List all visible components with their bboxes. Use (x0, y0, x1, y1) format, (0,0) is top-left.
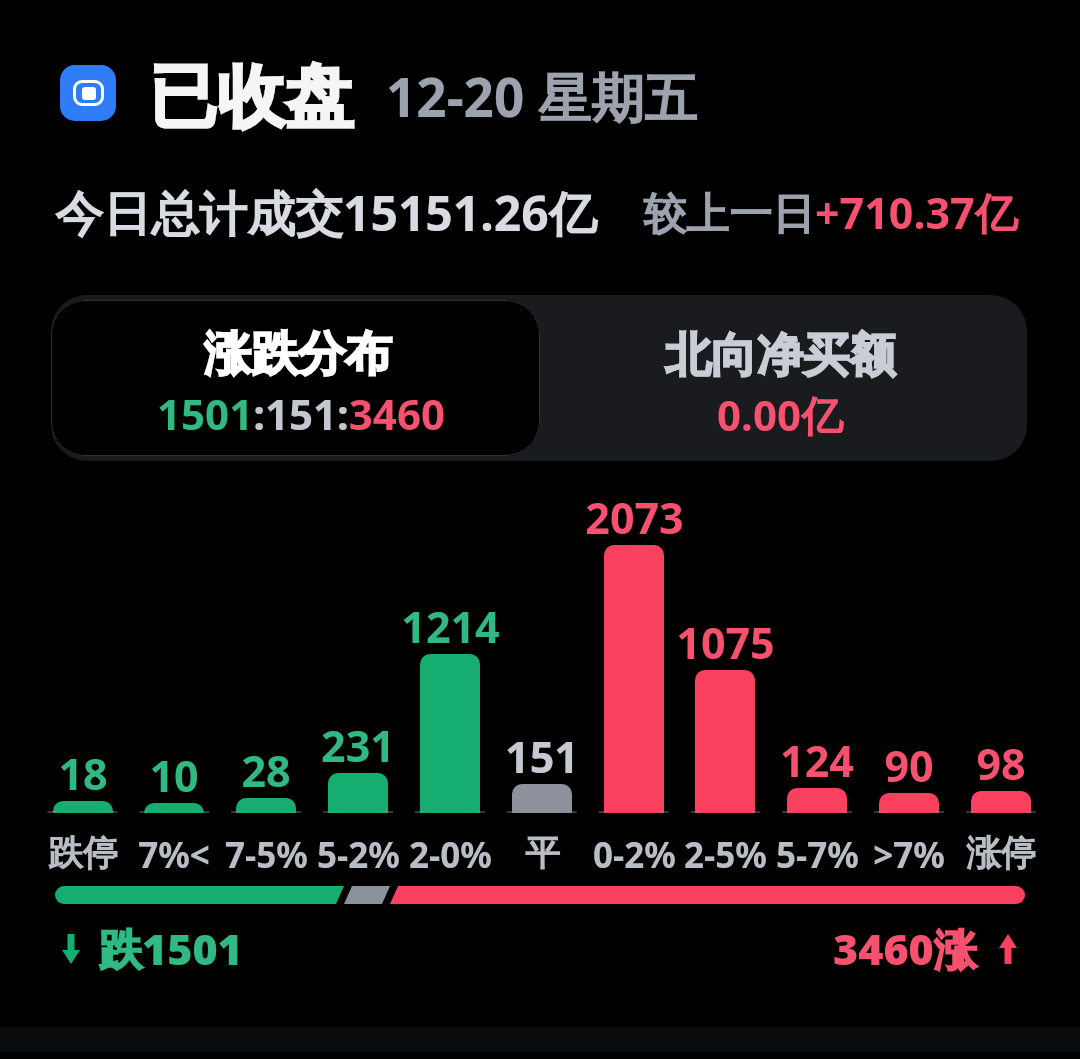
staticText: 231 (321, 716, 395, 775)
staticText: 已收盘 (149, 55, 353, 141)
staticText: 2-5% (684, 831, 767, 879)
staticText: 2-0% (409, 831, 492, 879)
staticText: 1501:151:3460 (157, 385, 445, 442)
staticText: 1075 (676, 613, 775, 672)
staticText: 北向净买额 (665, 327, 895, 385)
staticText: 28 (241, 741, 291, 800)
button[interactable]: Market status (60, 65, 116, 121)
staticText: >7% (873, 831, 945, 879)
staticText: 3460涨 (833, 919, 977, 978)
staticText: 7-5% (225, 831, 308, 879)
button[interactable]: 3460涨 (833, 919, 1017, 978)
staticText: 涨停 (966, 831, 1036, 875)
staticText: 今日总计成交15151.26亿 (55, 180, 597, 246)
staticText: 12-20 星期五 (386, 60, 698, 132)
staticText: 跌1501 (99, 919, 243, 978)
staticText: 较上一日+710.37亿 (643, 183, 1018, 242)
staticText: 98 (976, 734, 1026, 793)
staticText: 1214 (401, 597, 500, 656)
button[interactable]: Down (62, 919, 243, 978)
other: Down (62, 934, 80, 964)
staticText: 7%< (138, 831, 210, 879)
staticText: 平 (525, 831, 560, 875)
staticText: 18 (58, 744, 108, 803)
staticText: 0.00亿 (717, 386, 843, 443)
staticText: 5-7% (776, 831, 859, 879)
other: Up (999, 934, 1017, 964)
staticText: 跌停 (48, 831, 118, 875)
staticText: 10 (149, 746, 199, 805)
staticText: 124 (780, 731, 854, 790)
staticText: 涨跌分布 (204, 325, 392, 384)
button[interactable]: 北向净买额 (540, 295, 1027, 461)
staticText: 0-2% (593, 831, 676, 879)
staticText: 151 (505, 727, 579, 786)
staticText: 2073 (585, 488, 684, 547)
staticText: 5-2% (317, 831, 400, 879)
staticText: 90 (884, 736, 934, 795)
button[interactable]: 涨跌分布 (51, 300, 540, 456)
